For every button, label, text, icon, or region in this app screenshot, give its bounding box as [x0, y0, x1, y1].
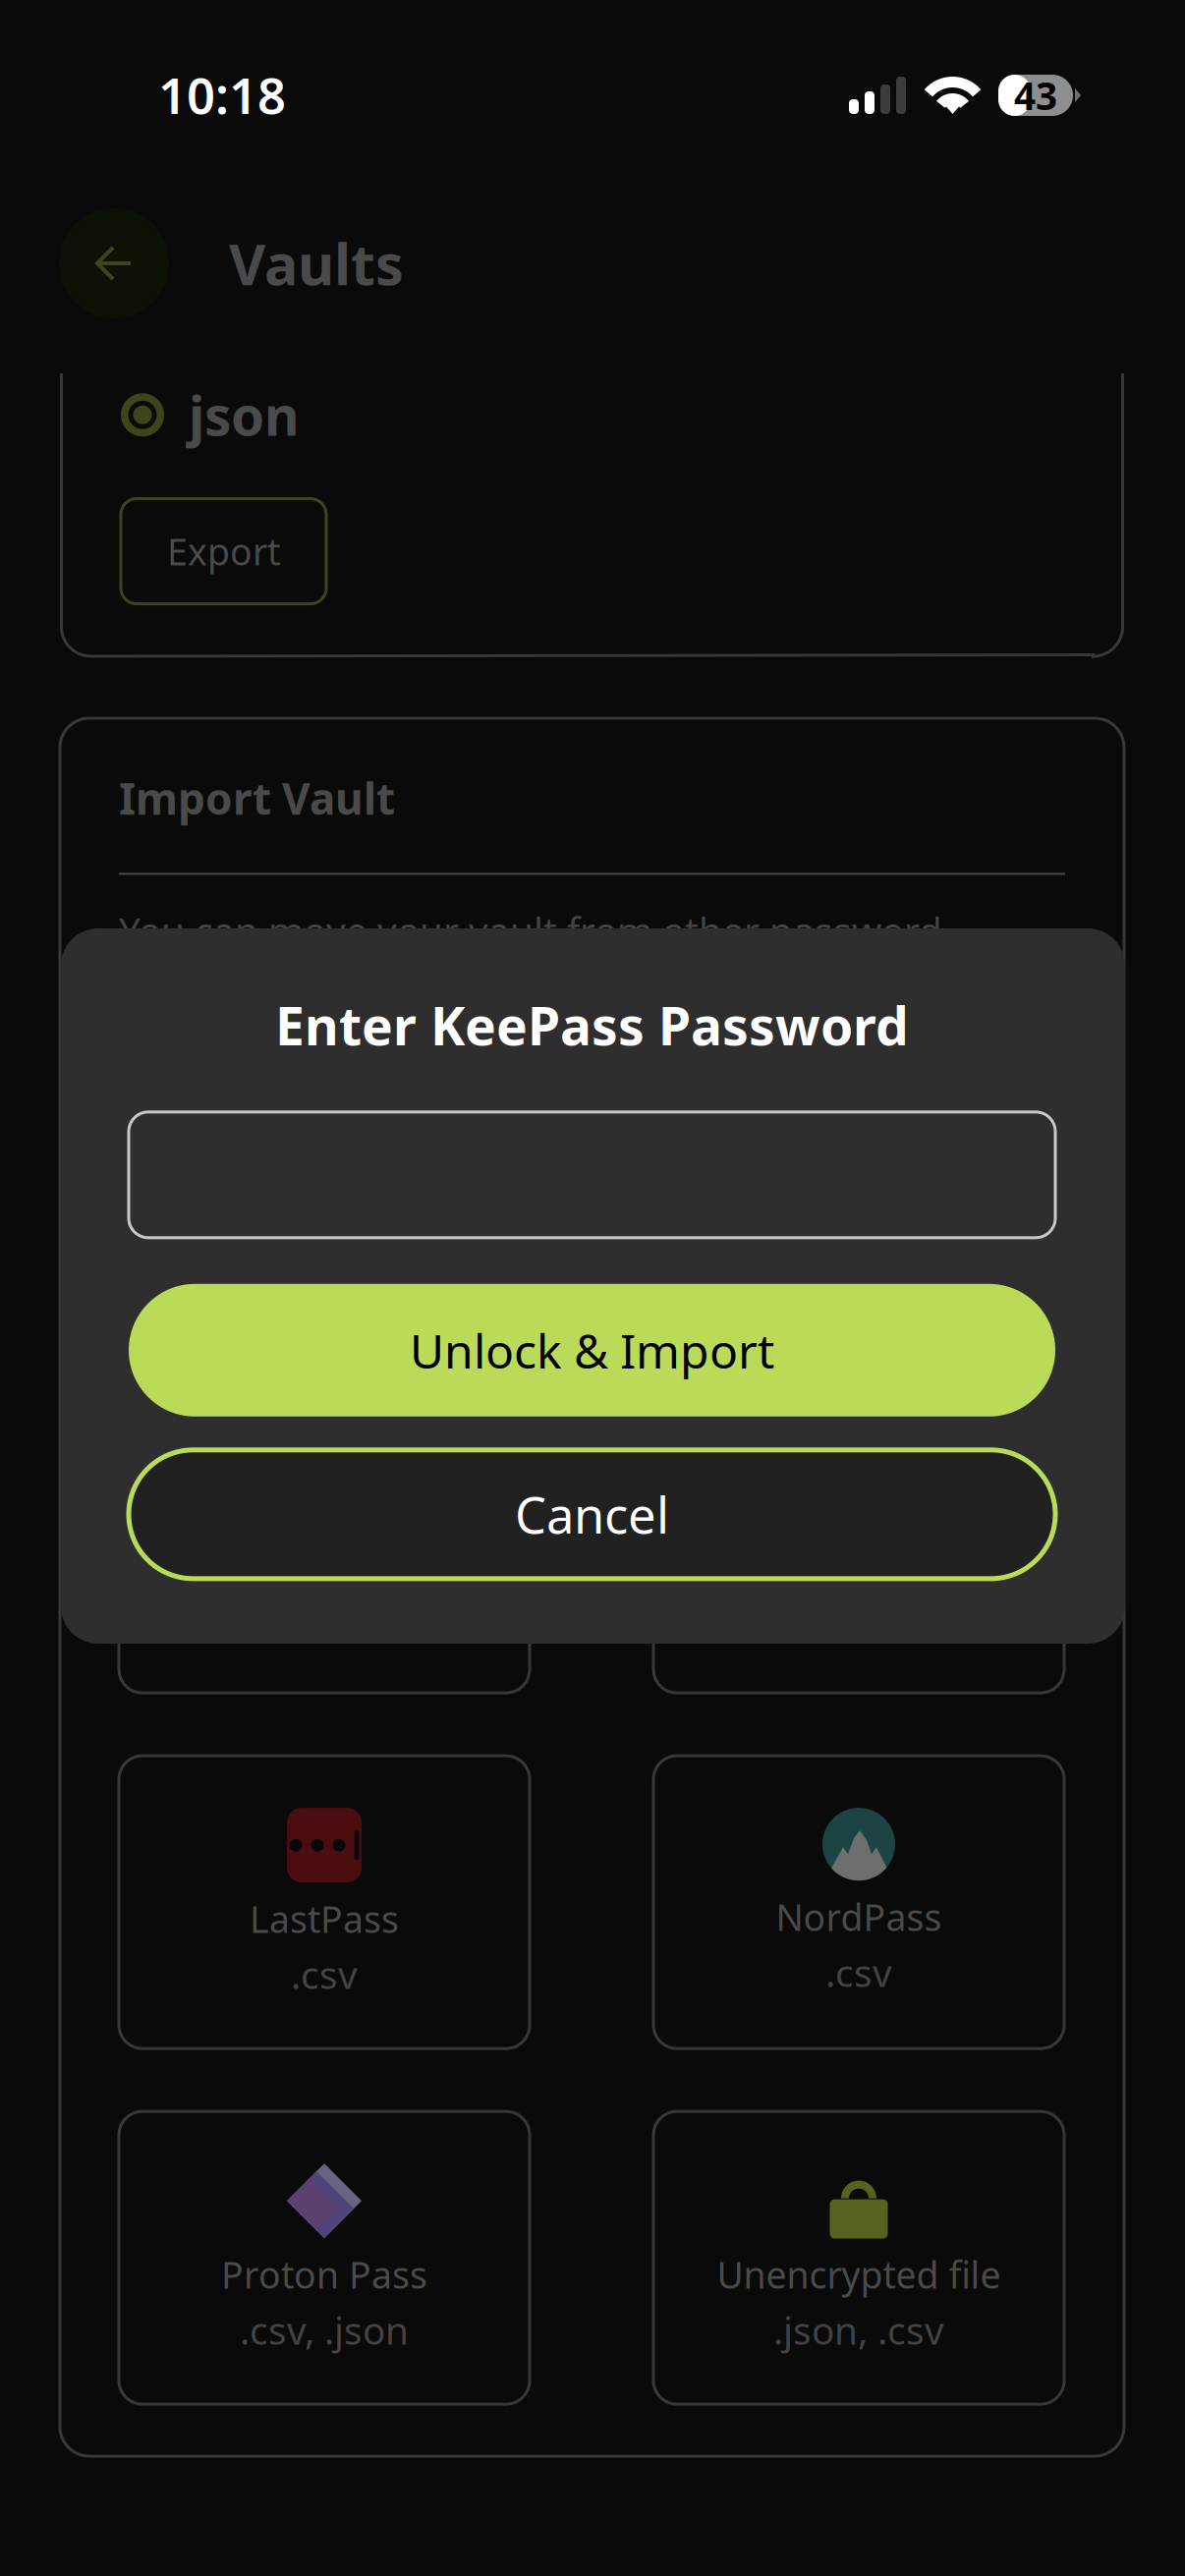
staticText: Bitwarden [771, 1537, 947, 1585]
staticText: NordPass [776, 1892, 942, 1941]
staticText: You can move your vault from other passw… [119, 905, 942, 1006]
staticText: .csv, .json [240, 2305, 409, 2355]
button[interactable]: Proton Pass [119, 2111, 530, 2404]
button[interactable]: 1Password [119, 1400, 530, 1693]
button[interactable]: Export [121, 499, 326, 604]
button[interactable]: Bitwarden [653, 1400, 1064, 1693]
staticText: Vaults [229, 226, 404, 301]
staticText: json [189, 379, 300, 451]
staticText: 43 [1014, 70, 1057, 120]
button[interactable]: Unlock & Import [129, 1284, 1055, 1417]
button[interactable]: Back [59, 208, 169, 318]
button[interactable]: Cancel [129, 1450, 1055, 1579]
staticText: Proton Pass [221, 2250, 427, 2299]
staticText: 10:18 [158, 62, 286, 128]
staticText: .csv [291, 1949, 358, 1999]
staticText: .json, .csv [773, 2305, 944, 2355]
staticText: 1Password [230, 1539, 418, 1587]
button[interactable]: LastPass [119, 1756, 530, 2049]
staticText: .csv [825, 1947, 892, 1997]
staticText: Unencrypted file [717, 2250, 1001, 2299]
staticText: Cancel [515, 1481, 669, 1547]
staticText: Export [167, 527, 280, 576]
staticText: Import Vault [119, 769, 395, 827]
staticText: LastPass [250, 1894, 399, 1943]
staticText: Unlock & Import [410, 1319, 774, 1382]
button[interactable]: Unencrypted file [653, 2111, 1064, 2404]
staticText: Enter KeePass Password [275, 990, 909, 1060]
button[interactable]: NordPass [653, 1756, 1064, 2049]
